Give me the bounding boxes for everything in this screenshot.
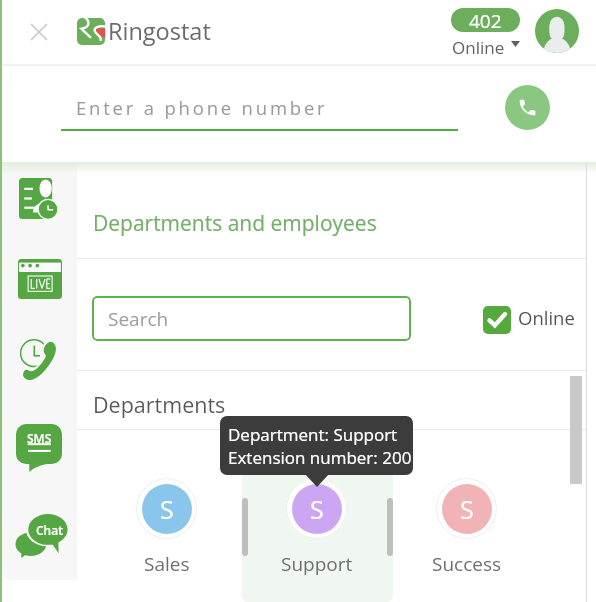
staticText: Support: [281, 551, 353, 577]
staticText: S: [310, 492, 324, 526]
button[interactable]: Contacts history: [19, 178, 58, 219]
button[interactable]: S: [115, 478, 219, 578]
button[interactable]: Chat: [14, 511, 65, 558]
button[interactable]: Call history: [19, 337, 59, 379]
staticText: Extension number: 200: [228, 446, 412, 469]
button[interactable]: Call: [505, 85, 550, 130]
button[interactable]: S: [265, 478, 369, 578]
staticText: Chat: [36, 522, 63, 538]
staticText: Search: [108, 306, 169, 332]
button[interactable]: Close: [23, 16, 54, 47]
staticText: Online: [452, 36, 505, 59]
staticText: S: [460, 492, 474, 526]
staticText: Sales: [144, 551, 190, 577]
button[interactable]: Search: [92, 296, 411, 341]
button[interactable]: Online: [483, 300, 573, 340]
button[interactable]: Profile: [535, 9, 579, 53]
button[interactable]: S: [415, 478, 519, 578]
staticText: Success: [432, 551, 502, 577]
staticText: 402: [469, 8, 502, 32]
button[interactable]: 402: [449, 5, 523, 55]
button[interactable]: SMS: [16, 424, 62, 472]
staticText: Enter a phone number: [76, 95, 328, 120]
staticText: SMS: [27, 430, 52, 446]
staticText: Departments: [93, 390, 226, 419]
staticText: Departments and employees: [93, 209, 377, 238]
staticText: Online: [518, 305, 575, 330]
staticText: Ringostat: [108, 15, 211, 47]
staticText: Department: Support: [228, 423, 398, 446]
button[interactable]: Live monitor: [18, 259, 62, 299]
staticText: S: [160, 492, 174, 526]
